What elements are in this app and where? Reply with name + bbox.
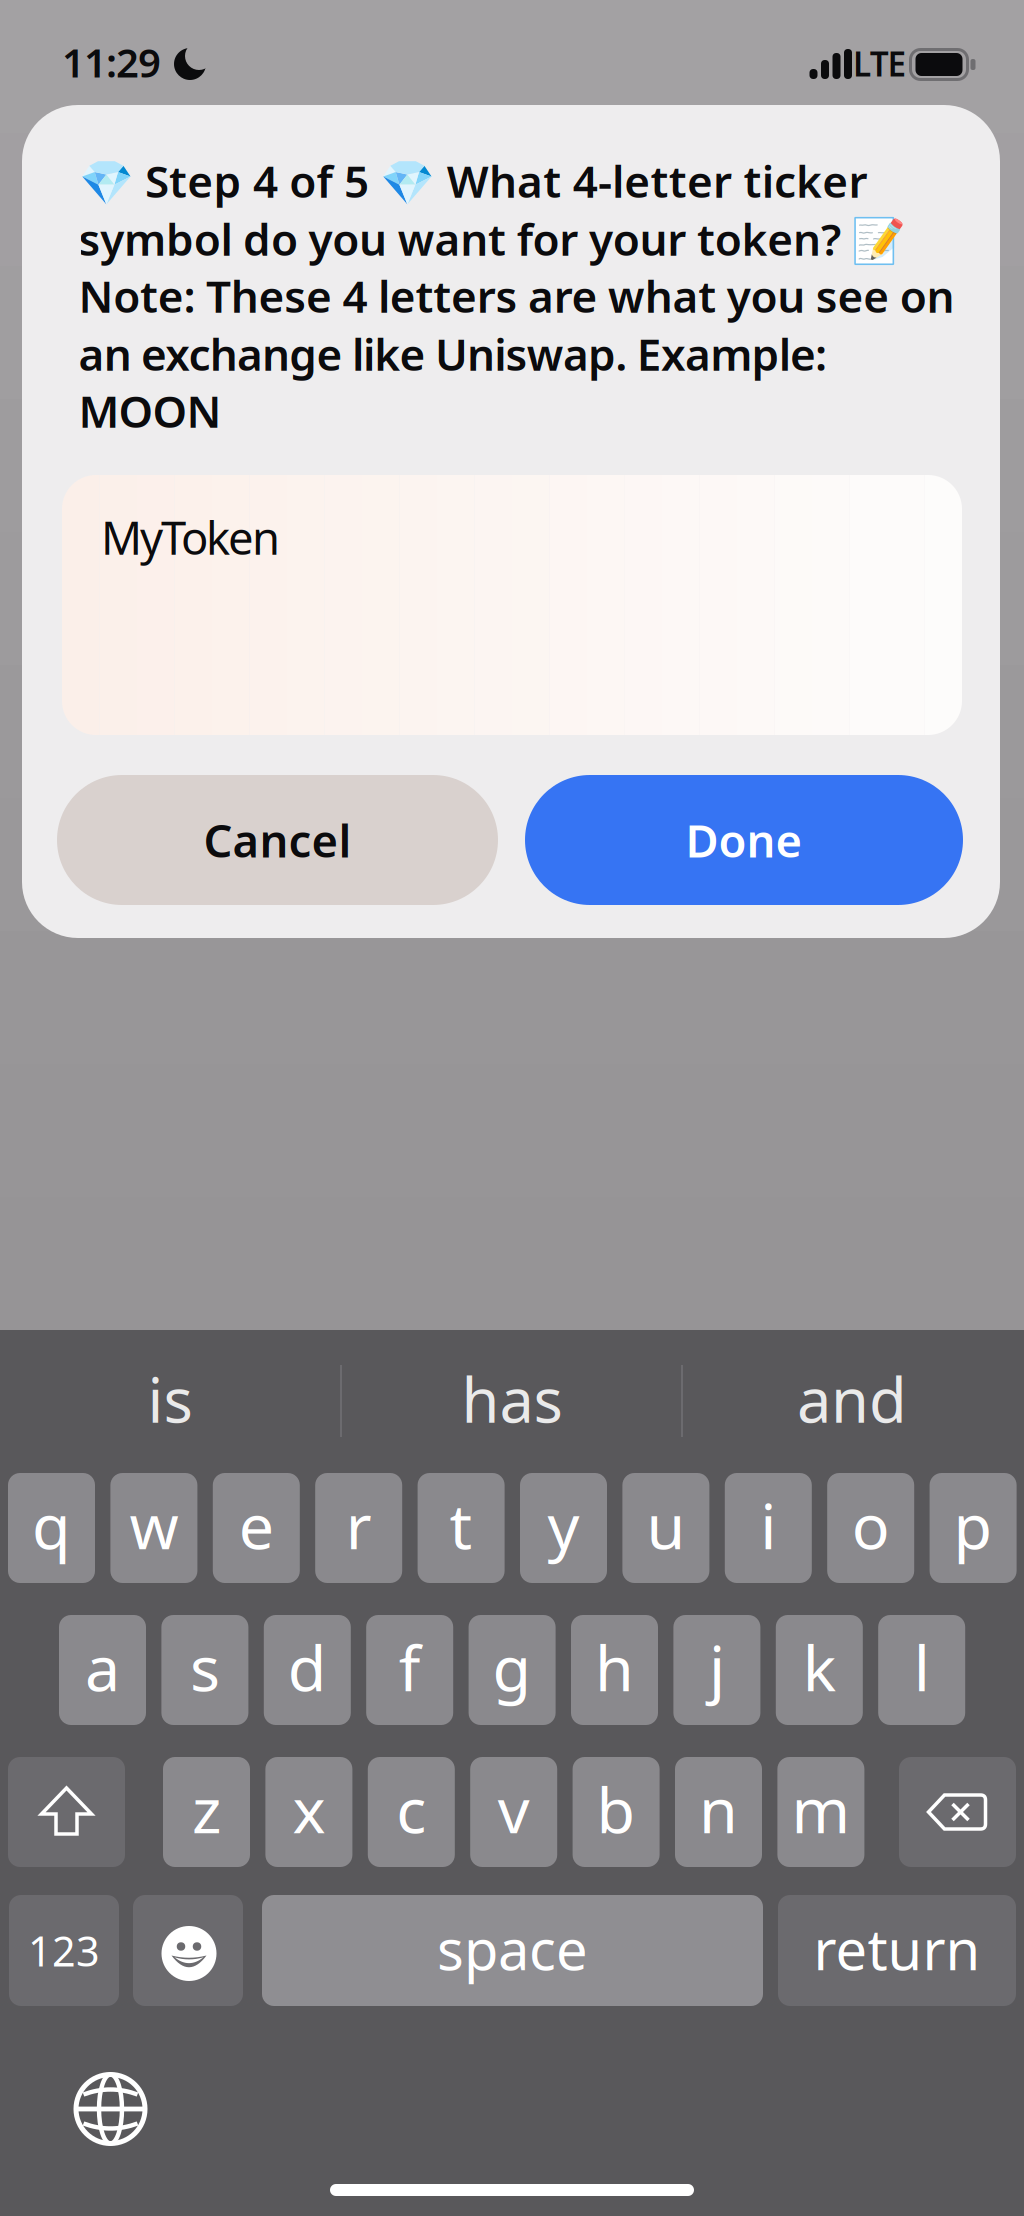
staticText: v xyxy=(498,1767,530,1851)
button[interactable]: a xyxy=(59,1615,146,1725)
staticText: w xyxy=(129,1483,178,1567)
staticText: space xyxy=(437,1911,588,1986)
button[interactable]: Delete xyxy=(899,1757,1016,1867)
staticText: 123 xyxy=(28,1923,100,1978)
staticText: an exchange like Uniswap. Example: xyxy=(78,324,827,383)
staticText: o xyxy=(852,1483,890,1567)
button[interactable]: MyToken xyxy=(62,475,962,735)
staticText: p xyxy=(954,1483,993,1567)
staticText: is xyxy=(147,1358,192,1440)
staticText: l xyxy=(914,1625,930,1709)
button[interactable]: i xyxy=(725,1473,812,1583)
button[interactable]: k xyxy=(776,1615,863,1725)
button[interactable]: is xyxy=(5,1339,335,1459)
button[interactable]: w xyxy=(110,1473,197,1583)
staticText: u xyxy=(646,1483,685,1567)
button[interactable]: o xyxy=(827,1473,914,1583)
button[interactable]: Emoji xyxy=(133,1895,243,2006)
staticText: y xyxy=(547,1483,579,1567)
button[interactable]: p xyxy=(930,1473,1017,1583)
staticText: Cancel xyxy=(203,810,351,870)
button[interactable]: has xyxy=(347,1339,677,1459)
staticText: r xyxy=(346,1483,372,1567)
button[interactable]: y xyxy=(520,1473,607,1583)
staticText: f xyxy=(399,1625,421,1709)
staticText: g xyxy=(493,1625,532,1709)
staticText: has xyxy=(461,1358,562,1440)
staticText: h xyxy=(595,1625,634,1709)
button[interactable]: m xyxy=(777,1757,864,1867)
button[interactable]: z xyxy=(163,1757,250,1867)
staticText: b xyxy=(597,1767,636,1851)
button[interactable]: b xyxy=(573,1757,660,1867)
staticText: d xyxy=(288,1625,327,1709)
button[interactable]: Next keyboard xyxy=(75,2074,145,2144)
button[interactable]: r xyxy=(315,1473,402,1583)
staticText: s xyxy=(190,1625,220,1709)
button[interactable]: h xyxy=(571,1615,658,1725)
staticText: z xyxy=(192,1767,221,1851)
staticText: and xyxy=(797,1358,907,1440)
staticText: t xyxy=(450,1483,473,1567)
button[interactable]: g xyxy=(469,1615,556,1725)
button[interactable]: Done xyxy=(525,775,963,905)
button[interactable]: u xyxy=(622,1473,709,1583)
staticText: MyToken xyxy=(101,507,280,567)
staticText: k xyxy=(803,1625,836,1709)
staticText: n xyxy=(699,1767,738,1851)
staticText: j xyxy=(709,1625,725,1709)
button[interactable]: return xyxy=(778,1895,1016,2006)
staticText: x xyxy=(292,1767,325,1851)
staticText: e xyxy=(239,1483,274,1567)
button[interactable]: f xyxy=(366,1615,453,1725)
button[interactable]: 123 xyxy=(9,1895,119,2006)
staticText: Note: These 4 letters are what you see o… xyxy=(78,266,954,325)
button[interactable]: n xyxy=(675,1757,762,1867)
staticText: i xyxy=(760,1483,776,1567)
staticText: q xyxy=(32,1483,71,1567)
button[interactable]: Cancel xyxy=(57,775,498,905)
staticText: symbol do you want for your token? 📝 xyxy=(78,209,906,268)
button[interactable]: Shift xyxy=(8,1757,125,1867)
staticText: LTE xyxy=(853,41,907,86)
staticText: 11:29 xyxy=(62,35,161,89)
button[interactable]: v xyxy=(470,1757,557,1867)
staticText: MOON xyxy=(78,381,221,440)
button[interactable]: t xyxy=(418,1473,505,1583)
button[interactable]: x xyxy=(265,1757,352,1867)
button[interactable]: space xyxy=(262,1895,763,2006)
button[interactable]: s xyxy=(161,1615,248,1725)
staticText: 💎 Step 4 of 5 💎 What 4-letter ticker xyxy=(78,151,867,210)
staticText: return xyxy=(813,1911,980,1986)
button[interactable]: l xyxy=(878,1615,965,1725)
button[interactable]: c xyxy=(368,1757,455,1867)
button[interactable]: and xyxy=(687,1339,1017,1459)
staticText: Done xyxy=(685,810,802,870)
button[interactable]: q xyxy=(8,1473,95,1583)
staticText: c xyxy=(396,1767,426,1851)
staticText: a xyxy=(85,1625,120,1709)
button[interactable]: j xyxy=(673,1615,760,1725)
button[interactable]: e xyxy=(213,1473,300,1583)
staticText: m xyxy=(791,1767,850,1851)
button[interactable]: d xyxy=(264,1615,351,1725)
